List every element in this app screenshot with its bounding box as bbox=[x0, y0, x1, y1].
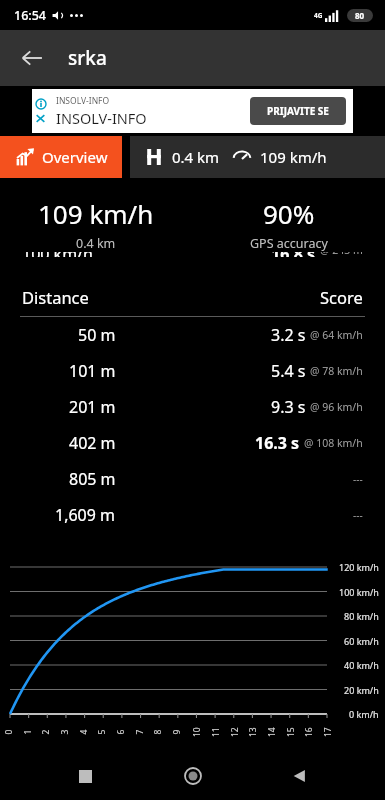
staticText: @ 78 km/h bbox=[310, 364, 363, 378]
staticText: 10 bbox=[191, 727, 203, 737]
staticText: 6 bbox=[114, 729, 126, 734]
staticText: 3 bbox=[58, 729, 70, 734]
staticText: INSOLV-INFO bbox=[56, 95, 110, 107]
staticText: 0 km/h bbox=[349, 708, 379, 720]
staticText: 20 km/h bbox=[344, 684, 379, 696]
staticText: 5 bbox=[95, 729, 107, 734]
staticText: 1,609 m bbox=[55, 504, 116, 526]
staticText: 90% bbox=[263, 196, 315, 231]
staticText: --- bbox=[353, 508, 363, 522]
staticText: 16.8 s bbox=[271, 252, 316, 257]
button[interactable]: Back bbox=[277, 753, 323, 799]
button[interactable]: 0.4 km bbox=[130, 136, 385, 178]
staticText: INSOLV-INFO bbox=[56, 108, 147, 128]
button[interactable]: 402 m bbox=[0, 425, 385, 461]
button[interactable]: Home bbox=[170, 753, 216, 799]
staticText: 0.4 km bbox=[172, 147, 220, 167]
staticText: 9 bbox=[170, 729, 182, 734]
staticText: @ 108 km/h bbox=[304, 436, 363, 450]
staticText: @ 96 km/h bbox=[310, 400, 363, 414]
staticText: 805 m bbox=[69, 468, 116, 490]
staticText: Score bbox=[320, 286, 363, 308]
staticText: --- bbox=[353, 472, 363, 486]
button[interactable]: INSOLV-INFO bbox=[32, 89, 353, 133]
staticText: 402 m bbox=[69, 432, 116, 454]
staticText: 109 km/h bbox=[260, 147, 327, 167]
staticText: 14 bbox=[266, 727, 278, 737]
button[interactable]: Back bbox=[12, 38, 52, 78]
staticText: 4 bbox=[77, 729, 89, 734]
button[interactable]: Overview bbox=[0, 136, 122, 178]
staticText: 50 m bbox=[78, 324, 116, 346]
staticText: 4G bbox=[314, 11, 323, 20]
staticText: GPS accuracy bbox=[250, 235, 328, 252]
staticText: 11 bbox=[210, 727, 222, 737]
button[interactable]: 805 m bbox=[0, 461, 385, 497]
staticText: Overview bbox=[42, 147, 108, 167]
button[interactable]: 201 m bbox=[0, 389, 385, 425]
staticText: 15 bbox=[285, 727, 297, 737]
button[interactable]: 50 m bbox=[0, 317, 385, 353]
staticText: 100 km/h bbox=[22, 252, 93, 257]
staticText: 120 km/h bbox=[339, 561, 379, 573]
staticText: 13 bbox=[247, 727, 259, 737]
staticText: 101 m bbox=[69, 360, 116, 382]
staticText: 201 m bbox=[69, 396, 116, 418]
staticText: 7 bbox=[133, 729, 145, 734]
button[interactable]: 101 m bbox=[0, 353, 385, 389]
staticText: 16:54 bbox=[14, 7, 47, 24]
button[interactable]: Recent apps bbox=[62, 753, 108, 799]
staticText: PRIJAVITE SE bbox=[267, 104, 329, 118]
staticText: 0 bbox=[2, 729, 14, 734]
staticText: @ 243 m bbox=[320, 252, 363, 257]
staticText: 60 km/h bbox=[344, 635, 379, 647]
staticText: 1 bbox=[21, 729, 33, 734]
button[interactable]: 1,609 m bbox=[0, 497, 385, 533]
staticText: 109 km/h bbox=[38, 196, 154, 231]
staticText: 0.4 km bbox=[76, 235, 116, 252]
staticText: 16.3 s bbox=[255, 432, 300, 454]
staticText: 12 bbox=[229, 727, 241, 737]
staticText: 8 bbox=[151, 729, 163, 734]
staticText: 3.2 s bbox=[271, 324, 306, 346]
staticText: 16 bbox=[303, 727, 315, 737]
staticText: 100 km/h bbox=[339, 586, 379, 598]
staticText: 9.3 s bbox=[271, 396, 306, 418]
staticText: Distance bbox=[22, 286, 89, 308]
staticText: 17 bbox=[322, 727, 334, 737]
staticText: 80 bbox=[355, 10, 365, 21]
button[interactable]: PRIJAVITE SE bbox=[250, 97, 346, 125]
staticText: 80 km/h bbox=[344, 610, 379, 622]
staticText: 5.4 s bbox=[271, 360, 306, 382]
staticText: @ 64 km/h bbox=[310, 328, 363, 342]
staticText: 40 km/h bbox=[344, 659, 379, 671]
staticText: srka bbox=[68, 45, 107, 71]
staticText: 2 bbox=[39, 729, 51, 734]
